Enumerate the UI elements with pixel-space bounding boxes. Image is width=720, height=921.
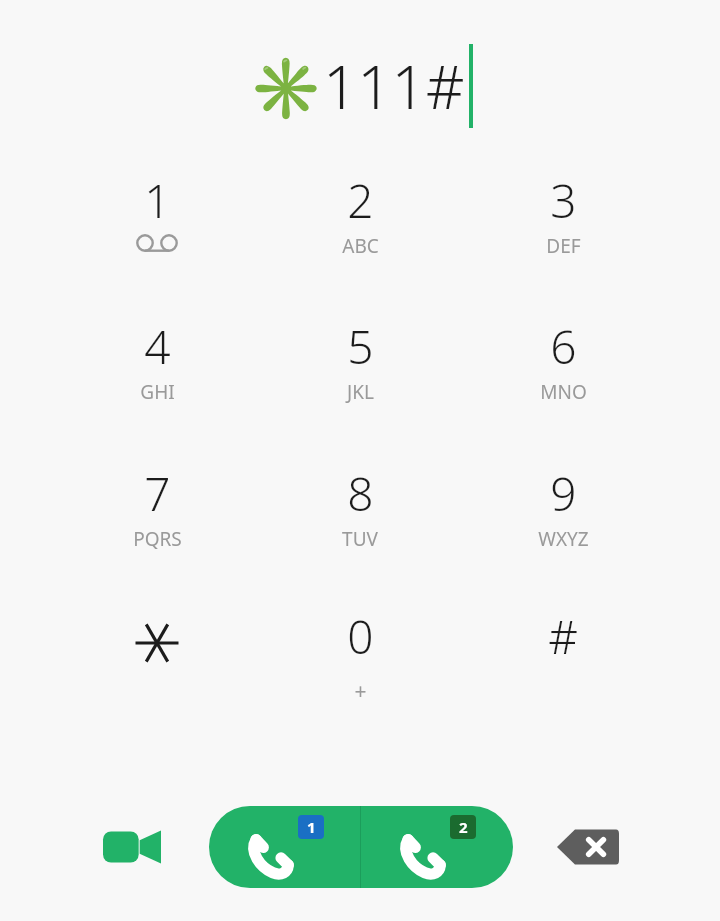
staticText: PQRS <box>133 526 182 552</box>
staticText: WXYZ <box>538 526 589 552</box>
button[interactable]: # <box>478 605 648 737</box>
button[interactable]: Delete <box>542 806 634 888</box>
button[interactable]: 1 <box>72 169 242 301</box>
button[interactable]: 5 <box>275 315 445 447</box>
button[interactable]: 0 <box>275 605 445 737</box>
staticText: 8 <box>347 462 374 525</box>
staticText: ABC <box>342 233 379 259</box>
staticText: DEF <box>546 233 581 259</box>
staticText: 1 <box>144 169 171 232</box>
staticText: 0 <box>347 605 374 668</box>
button[interactable]: Video call <box>86 806 178 888</box>
button[interactable]: 6 <box>478 315 648 447</box>
button[interactable]: 2 <box>275 169 445 301</box>
staticText: # <box>548 605 578 668</box>
staticText: MNO <box>540 379 587 405</box>
staticText: 2 <box>347 169 374 232</box>
staticText: 9 <box>550 462 577 525</box>
button[interactable]: 9 <box>478 462 648 594</box>
staticText: 4 <box>144 315 171 378</box>
staticText: 1 <box>307 817 316 837</box>
button[interactable]: Call with SIM 1 <box>209 806 360 888</box>
button[interactable]: 8 <box>275 462 445 594</box>
staticText: GHI <box>140 379 175 405</box>
staticText: ✳111# <box>248 45 465 127</box>
staticText: 6 <box>550 315 577 378</box>
button[interactable]: 7 <box>72 462 242 594</box>
staticText: + <box>354 677 367 706</box>
staticText: 7 <box>144 462 171 525</box>
button[interactable]: Star <box>72 605 242 737</box>
staticText: 2 <box>459 817 468 837</box>
button[interactable]: 4 <box>72 315 242 447</box>
button[interactable]: 3 <box>478 169 648 301</box>
staticText: 5 <box>347 315 374 378</box>
staticText: 3 <box>550 169 577 232</box>
button[interactable]: Call with SIM 2 <box>361 806 513 888</box>
staticText: JKL <box>347 379 374 405</box>
staticText: TUV <box>342 526 378 552</box>
